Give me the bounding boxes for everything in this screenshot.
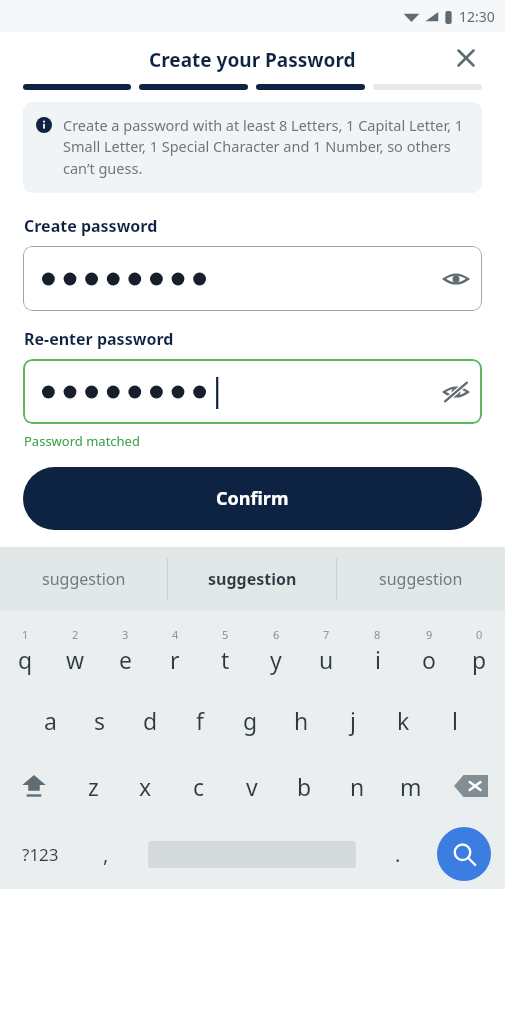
staticText: z [88, 771, 99, 802]
button[interactable]: f [175, 687, 225, 753]
staticText: p [472, 644, 487, 675]
button[interactable]: x [119, 753, 172, 819]
staticText: 6 [273, 627, 280, 642]
staticText: Confirm [216, 486, 289, 511]
button[interactable]: z [67, 753, 119, 819]
button[interactable]: suggestion [168, 547, 336, 610]
staticText: g [243, 705, 258, 736]
staticText: s [94, 705, 106, 736]
staticText: suggestion [379, 568, 463, 590]
staticText: suggestion [42, 568, 126, 590]
button[interactable]: 4 [150, 615, 200, 687]
button[interactable]: m [384, 753, 437, 819]
button[interactable]: Hide password [23, 359, 482, 424]
staticText: w [66, 644, 85, 675]
button[interactable]: suggestion [0, 547, 167, 610]
button[interactable]: n [331, 753, 384, 819]
button[interactable]: 3 [100, 615, 150, 687]
button[interactable]: Space [131, 819, 373, 889]
staticText: m [400, 771, 422, 802]
staticText: 8 [374, 627, 381, 642]
button[interactable]: s [75, 687, 125, 753]
staticText: n [350, 771, 365, 802]
button[interactable]: ?123 [0, 819, 81, 889]
staticText: c [193, 771, 205, 802]
staticText: q [18, 644, 33, 675]
staticText: 2 [72, 627, 79, 642]
button[interactable]: Search [423, 819, 505, 889]
staticText: Create your Password [149, 47, 356, 73]
staticText: r [170, 644, 180, 675]
button[interactable]: v [225, 753, 278, 819]
staticText: 5 [222, 627, 229, 642]
button[interactable]: d [125, 687, 175, 753]
button[interactable]: 2 [50, 615, 100, 687]
staticText: ?123 [22, 843, 59, 866]
staticText: e [119, 644, 132, 675]
staticText: x [139, 771, 152, 802]
staticText: 0 [476, 627, 483, 642]
staticText: a [44, 705, 57, 736]
staticText: Re-enter password [24, 328, 174, 350]
button[interactable]: 6 [250, 615, 301, 687]
staticText: i [375, 644, 381, 675]
staticText: o [422, 644, 436, 675]
staticText: Create a password with at least 8 Letter… [63, 115, 468, 179]
staticText: h [294, 705, 309, 736]
button[interactable]: b [278, 753, 331, 819]
staticText: , [103, 841, 109, 868]
staticText: 4 [172, 627, 179, 642]
button[interactable]: 7 [301, 615, 352, 687]
button[interactable]: suggestion [337, 547, 505, 610]
button[interactable]: h [276, 687, 327, 753]
staticText: t [221, 644, 230, 675]
staticText: b [297, 771, 312, 802]
staticText: j [350, 705, 356, 736]
button[interactable]: Close [451, 43, 481, 73]
button[interactable]: 0 [454, 615, 505, 687]
button[interactable]: Hide password [434, 370, 478, 414]
button[interactable]: , [81, 819, 131, 889]
button[interactable]: 9 [403, 615, 454, 687]
button[interactable]: Show password [23, 246, 482, 311]
staticText: Password matched [24, 432, 140, 450]
button[interactable]: 5 [200, 615, 250, 687]
button[interactable]: k [378, 687, 429, 753]
button[interactable]: 1 [0, 615, 50, 687]
staticText: 9 [426, 627, 433, 642]
button[interactable]: l [429, 687, 480, 753]
staticText: k [397, 705, 410, 736]
staticText: f [196, 705, 204, 736]
button[interactable]: j [327, 687, 378, 753]
staticText: Create password [24, 215, 158, 237]
button[interactable]: c [172, 753, 225, 819]
staticText: v [246, 771, 258, 802]
staticText: 3 [122, 627, 129, 642]
button[interactable]: g [225, 687, 276, 753]
button[interactable]: Confirm [23, 467, 482, 530]
staticText: suggestion [208, 568, 297, 590]
button[interactable]: . [373, 819, 423, 889]
staticText: u [319, 644, 334, 675]
staticText: 1 [22, 627, 29, 642]
staticText: 12:30 [459, 7, 495, 26]
button[interactable]: Backspace [437, 753, 505, 819]
button[interactable]: Show password [434, 257, 478, 301]
staticText: d [143, 705, 158, 736]
button[interactable]: 8 [352, 615, 403, 687]
staticText: y [270, 644, 282, 675]
staticText: . [395, 841, 401, 868]
button[interactable]: a [25, 687, 75, 753]
staticText: 7 [323, 627, 330, 642]
staticText: l [452, 705, 458, 736]
button[interactable]: Shift [0, 753, 67, 819]
